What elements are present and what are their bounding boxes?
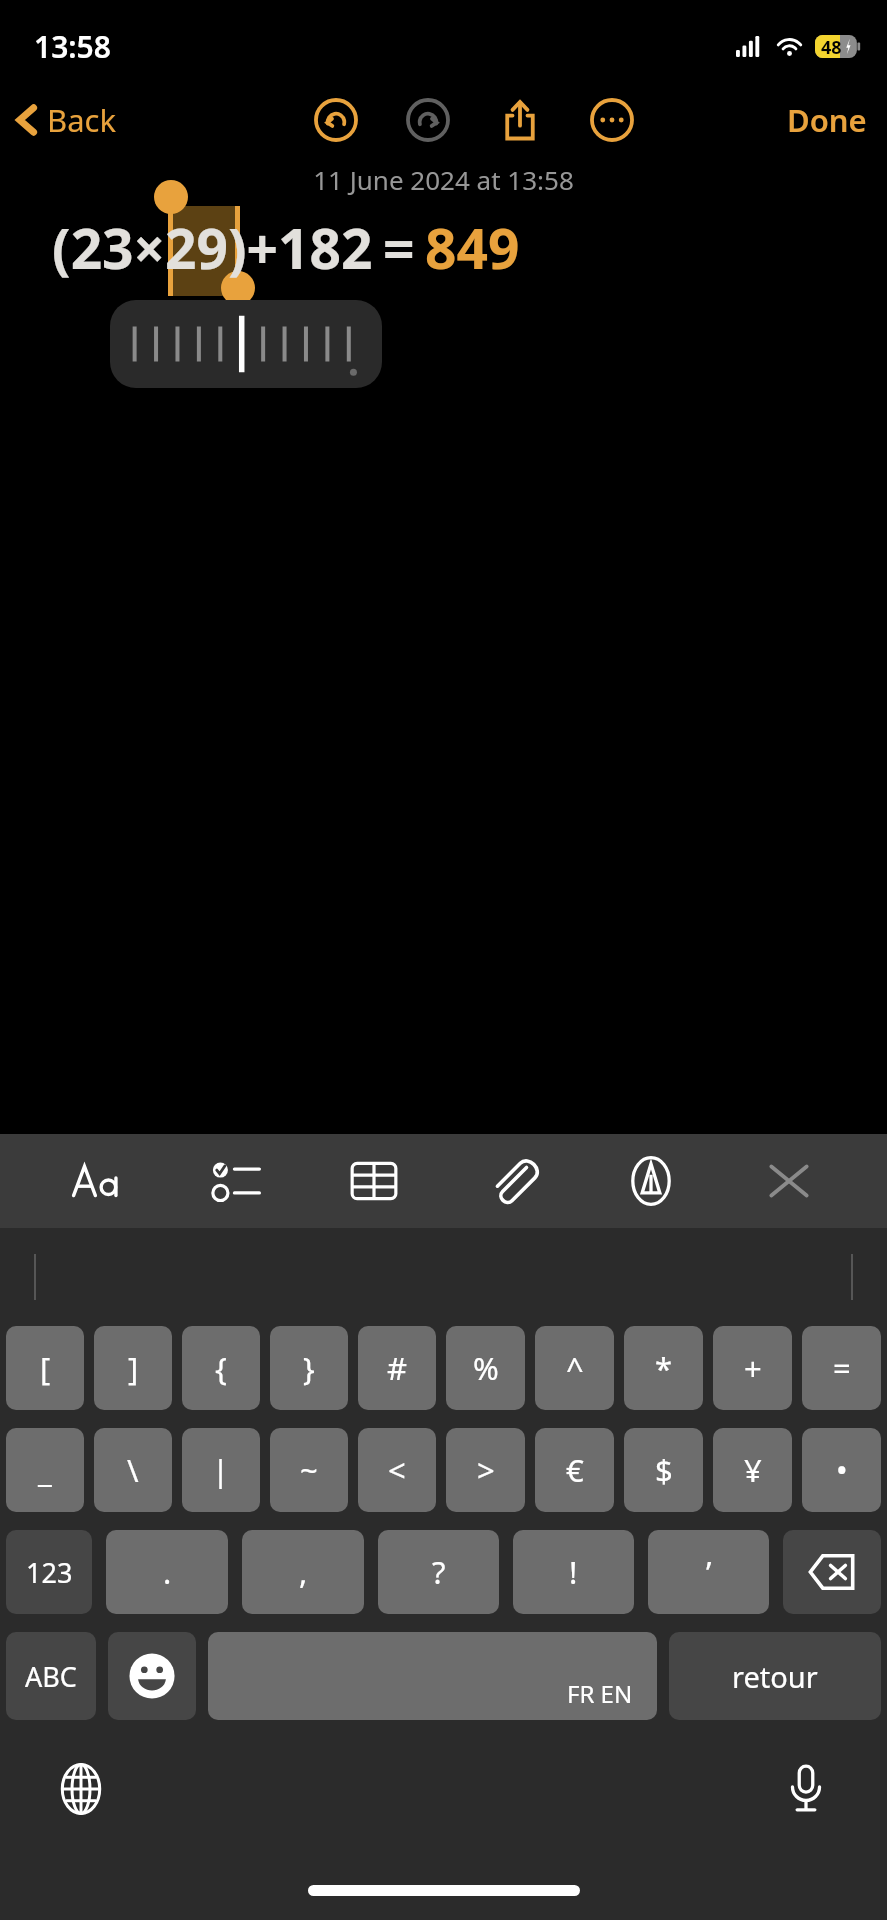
- staticText: =: [833, 1347, 851, 1389]
- button[interactable]: Share: [492, 92, 548, 148]
- button[interactable]: +: [713, 1326, 792, 1410]
- button[interactable]: More options: [584, 92, 640, 148]
- staticText: =: [383, 210, 415, 285]
- button[interactable]: _: [6, 1428, 84, 1512]
- button[interactable]: %: [446, 1326, 525, 1410]
- staticText: ’: [706, 1551, 712, 1593]
- button[interactable]: #: [358, 1326, 436, 1410]
- staticText: 123: [26, 1554, 73, 1591]
- staticText: Back: [47, 99, 116, 141]
- button[interactable]: ?: [378, 1530, 499, 1614]
- staticText: Done: [787, 99, 867, 141]
- button[interactable]: $: [624, 1428, 703, 1512]
- staticText: 849: [425, 210, 520, 285]
- button[interactable]: Text format: [58, 1140, 138, 1222]
- button[interactable]: Table: [334, 1140, 414, 1222]
- staticText: 13:58: [34, 26, 111, 67]
- button[interactable]: Space: [208, 1632, 657, 1720]
- button[interactable]: |: [182, 1428, 260, 1512]
- button[interactable]: ~: [270, 1428, 348, 1512]
- staticText: .: [163, 1551, 172, 1593]
- staticText: \: [127, 1449, 139, 1491]
- staticText: #: [387, 1347, 408, 1389]
- button[interactable]: !: [513, 1530, 634, 1614]
- staticText: •: [836, 1449, 848, 1491]
- button[interactable]: Attachment: [473, 1140, 553, 1222]
- button[interactable]: Back: [0, 91, 130, 149]
- button[interactable]: 123: [6, 1530, 92, 1614]
- button[interactable]: <: [358, 1428, 436, 1512]
- staticText: +: [744, 1347, 762, 1389]
- staticText: $: [655, 1449, 673, 1491]
- staticText: retour: [732, 1657, 818, 1696]
- staticText: _: [38, 1449, 52, 1491]
- button[interactable]: €: [535, 1428, 614, 1512]
- button[interactable]: Done: [767, 89, 887, 151]
- staticText: 11 June 2024 at 13:58: [313, 162, 574, 197]
- button[interactable]: ^: [535, 1326, 614, 1410]
- staticText: ]: [128, 1347, 139, 1389]
- staticText: ABC: [25, 1658, 77, 1695]
- button[interactable]: Checklist: [196, 1140, 276, 1222]
- button[interactable]: [: [6, 1326, 84, 1410]
- staticText: (23×29)+182: [52, 210, 373, 285]
- staticText: }: [303, 1347, 315, 1389]
- button[interactable]: .: [106, 1530, 228, 1614]
- button[interactable]: ABC: [6, 1632, 96, 1720]
- button[interactable]: ,: [242, 1530, 364, 1614]
- staticText: !: [569, 1551, 578, 1593]
- button[interactable]: \: [94, 1428, 172, 1512]
- button[interactable]: Dictate: [773, 1756, 839, 1822]
- staticText: FR EN: [567, 1677, 633, 1710]
- button[interactable]: retour: [669, 1632, 881, 1720]
- button[interactable]: {: [182, 1326, 260, 1410]
- button[interactable]: ’: [648, 1530, 769, 1614]
- button[interactable]: Next keyboard: [48, 1756, 114, 1822]
- button[interactable]: }: [270, 1326, 348, 1410]
- staticText: <: [388, 1449, 406, 1491]
- staticText: 48: [821, 35, 842, 58]
- button[interactable]: Redo: [400, 92, 456, 148]
- staticText: >: [477, 1449, 495, 1491]
- button[interactable]: Undo: [308, 92, 364, 148]
- staticText: [: [40, 1347, 51, 1389]
- button[interactable]: •: [802, 1428, 881, 1512]
- button[interactable]: ¥: [713, 1428, 792, 1512]
- button[interactable]: >: [446, 1428, 525, 1512]
- button[interactable]: *: [624, 1326, 703, 1410]
- button[interactable]: Close keyboard: [749, 1140, 829, 1222]
- staticText: ^: [566, 1347, 584, 1389]
- staticText: €: [566, 1449, 584, 1491]
- staticText: ,: [299, 1551, 308, 1593]
- staticText: ?: [432, 1551, 446, 1593]
- button[interactable]: ]: [94, 1326, 172, 1410]
- staticText: %: [473, 1347, 499, 1389]
- staticText: *: [655, 1347, 673, 1389]
- staticText: |: [212, 1449, 230, 1491]
- button[interactable]: Markup: [611, 1140, 691, 1222]
- button[interactable]: =: [802, 1326, 881, 1410]
- button[interactable]: Emoji: [108, 1632, 196, 1720]
- staticText: ~: [300, 1449, 318, 1491]
- staticText: ¥: [744, 1449, 762, 1491]
- staticText: {: [215, 1347, 227, 1389]
- button[interactable]: Backspace: [783, 1530, 881, 1614]
